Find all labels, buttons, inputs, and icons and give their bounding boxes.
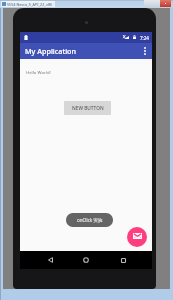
- staticText: NEW BUTTON: [72, 105, 104, 112]
- staticText: My Application: [25, 46, 76, 56]
- button[interactable]: Send email: [127, 227, 147, 247]
- staticText: 7:24: [140, 35, 149, 41]
- button[interactable]: NEW BUTTON: [64, 101, 111, 115]
- staticText: 5554:Nexus_5_API_22_x86: [7, 2, 53, 7]
- staticText: onClick 実施: [77, 217, 103, 223]
- button[interactable]: Recents: [116, 251, 130, 269]
- button[interactable]: Home: [79, 251, 93, 269]
- staticText: Hello World!: [26, 69, 51, 75]
- button[interactable]: Back: [43, 251, 57, 269]
- button[interactable]: More options: [138, 43, 152, 59]
